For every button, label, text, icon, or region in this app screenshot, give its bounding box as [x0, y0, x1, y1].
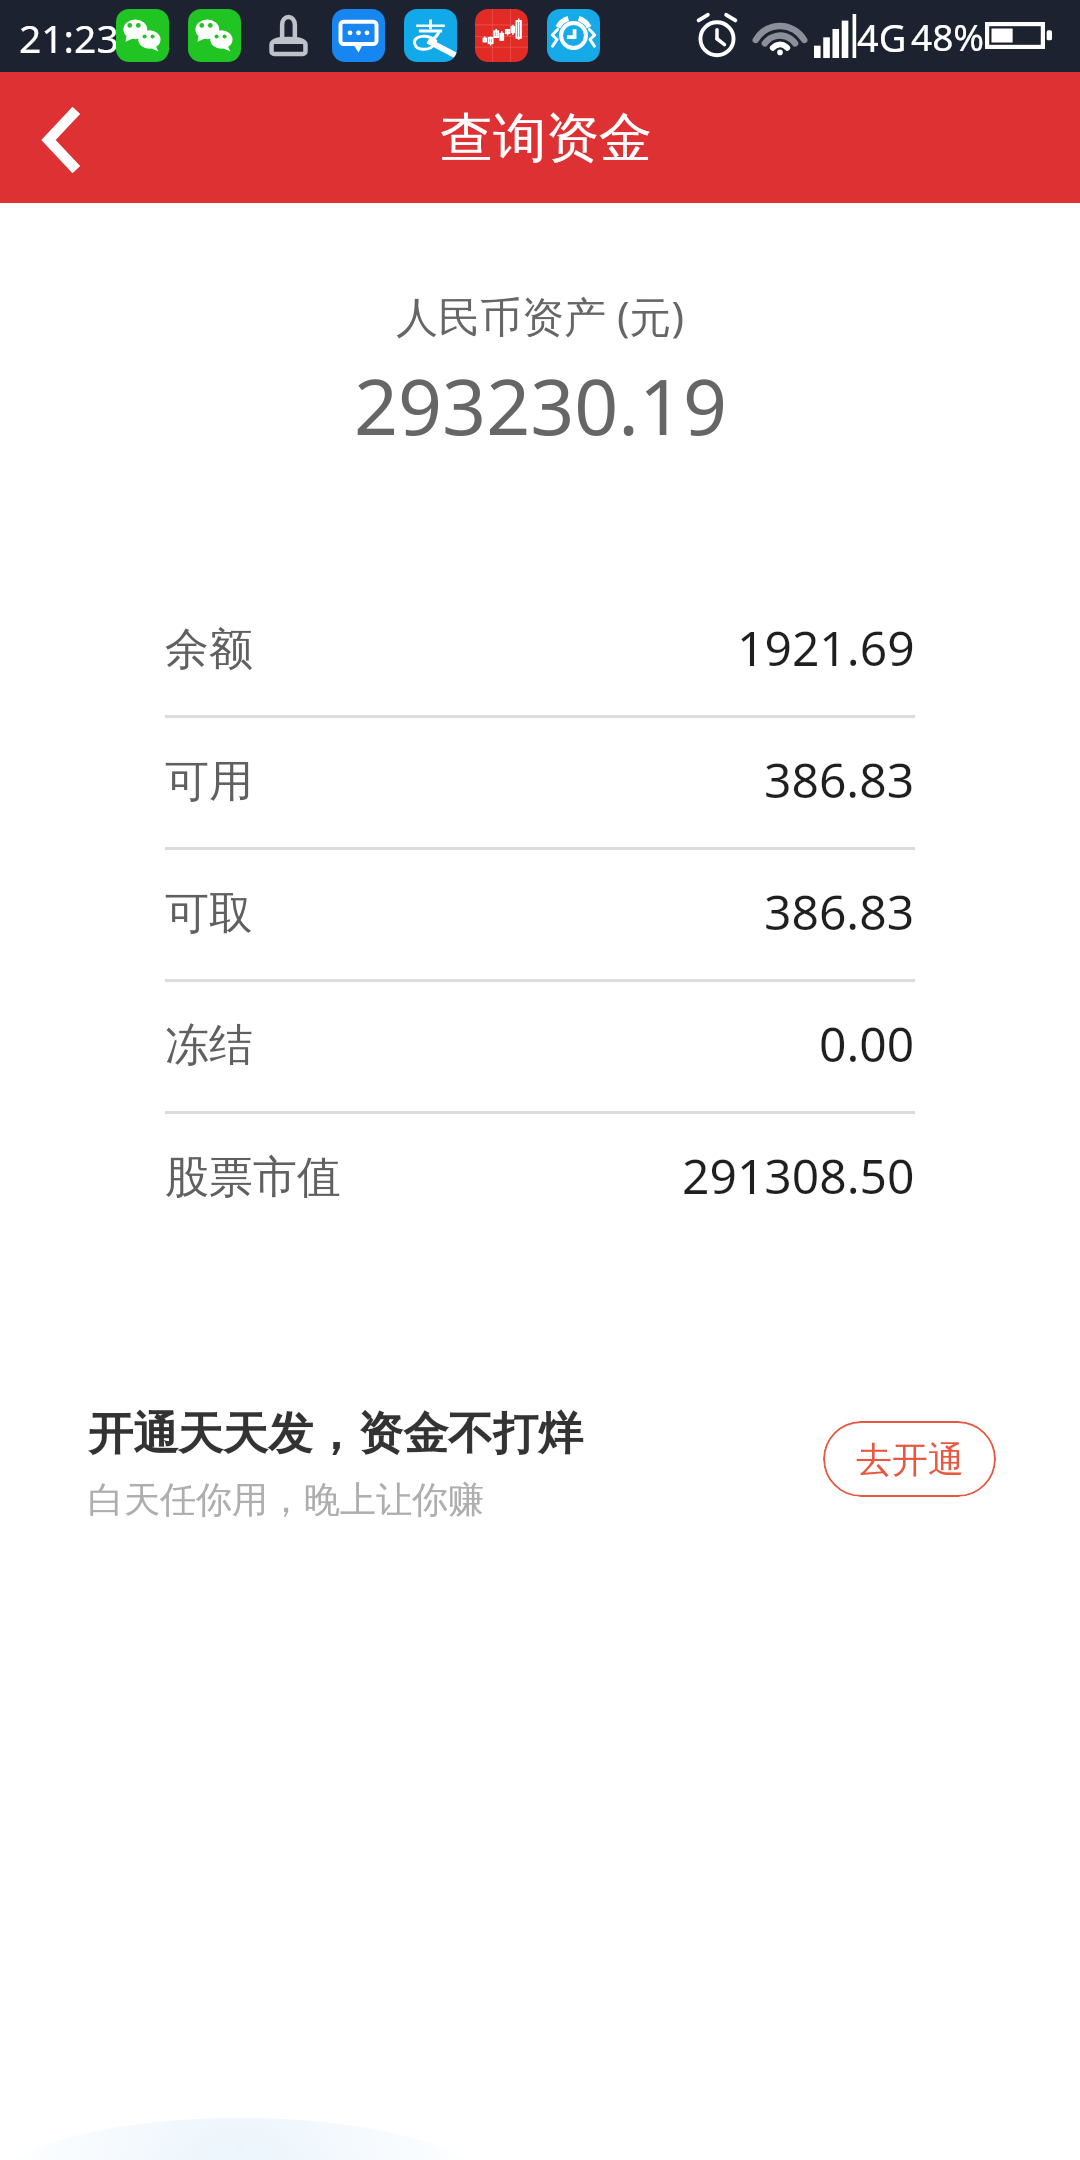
staticText: 查询资金 [440, 105, 652, 172]
staticText: 可取 [165, 886, 253, 941]
staticText: 人民币资产 (元) [396, 287, 685, 344]
staticText: 21:23 [19, 11, 119, 64]
staticText: 余额 [165, 622, 253, 677]
staticText: 0.00 [819, 1011, 915, 1076]
button[interactable]: 去开通 [823, 1421, 996, 1497]
staticText: 1921.69 [737, 615, 915, 680]
staticText: 可用 [165, 754, 253, 809]
staticText: 白天任你用，晚上让你赚 [88, 1477, 484, 1522]
staticText: 股票市值 [165, 1150, 341, 1205]
staticText: 开通天天发，资金不打烊 [88, 1406, 583, 1463]
staticText: 4G [857, 11, 907, 63]
staticText: 386.83 [764, 747, 915, 812]
staticText: 291308.50 [682, 1143, 915, 1208]
staticText: 冻结 [165, 1018, 253, 1073]
staticText: 去开通 [856, 1437, 964, 1482]
button[interactable]: 开通天天发，资金不打烊 [88, 1406, 583, 1522]
staticText: 293230.19 [354, 353, 727, 458]
staticText: 386.83 [764, 879, 915, 944]
button[interactable]: Back [0, 72, 120, 203]
staticText: 48% [911, 11, 985, 61]
